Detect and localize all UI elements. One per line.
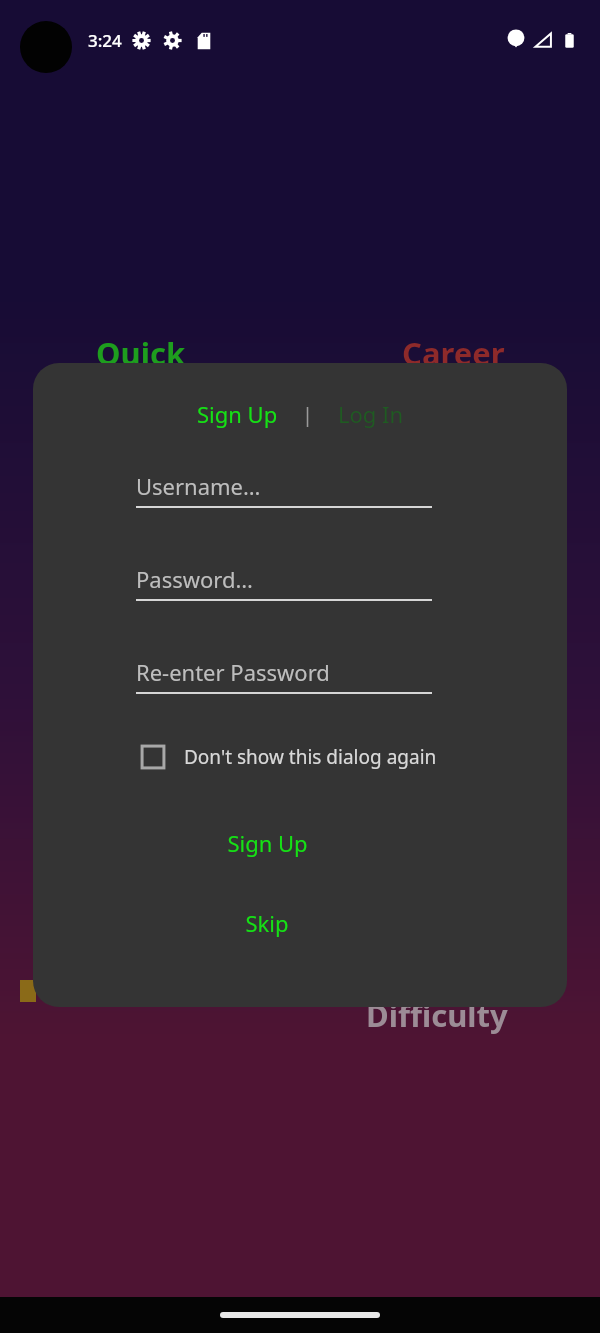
button[interactable]: Log In bbox=[328, 395, 414, 433]
staticText: | bbox=[302, 401, 314, 428]
staticText: Quick bbox=[96, 332, 186, 374]
button[interactable]: Username… bbox=[136, 471, 432, 508]
button[interactable]: Sign Up bbox=[33, 820, 567, 866]
staticText: Career bbox=[402, 332, 505, 374]
staticText: Log In bbox=[338, 399, 404, 429]
staticText: Don't show this dialog again bbox=[184, 744, 437, 770]
button[interactable]: Skip bbox=[33, 900, 567, 946]
staticText: Sign Up bbox=[197, 399, 278, 429]
button[interactable]: Don't show this dialog again bbox=[136, 738, 441, 776]
button[interactable]: Re-enter Password bbox=[136, 657, 432, 694]
button[interactable]: Sign Up bbox=[187, 395, 288, 433]
staticText: Re-enter Password bbox=[136, 657, 330, 687]
staticText: Skip bbox=[245, 908, 289, 938]
button[interactable]: Password… bbox=[136, 564, 432, 601]
staticText: Password… bbox=[136, 564, 253, 594]
staticText: Username… bbox=[136, 471, 261, 501]
staticText: Difficulty bbox=[366, 994, 508, 1036]
staticText: Sign Up bbox=[227, 828, 308, 858]
staticText: 3:24 bbox=[88, 29, 122, 52]
